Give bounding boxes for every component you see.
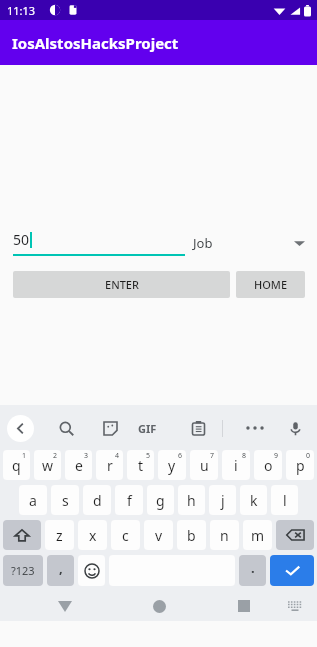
button[interactable]: Home (146, 593, 172, 619)
button[interactable]: v (144, 520, 173, 550)
staticText: t (138, 456, 144, 475)
button[interactable]: Recent apps (231, 593, 257, 619)
button[interactable]: ENTER (13, 271, 230, 298)
staticText: Job (193, 234, 213, 252)
staticText: w (42, 456, 54, 475)
button[interactable]: Done (270, 555, 314, 586)
button[interactable]: h (178, 485, 205, 515)
button[interactable]: w (34, 450, 61, 480)
staticText: 50 (13, 230, 30, 249)
staticText: 7 (210, 451, 215, 461)
button[interactable]: Emoji (78, 555, 105, 586)
button[interactable]: r (96, 450, 123, 480)
other: Keyboard active (283, 594, 307, 618)
button[interactable]: y (158, 450, 186, 480)
staticText: q (12, 456, 21, 475)
staticText: n (220, 526, 229, 545)
staticText: 8 (242, 451, 247, 461)
staticText: c (122, 526, 129, 545)
button[interactable]: . (239, 555, 266, 586)
button[interactable]: j (209, 485, 236, 515)
button[interactable]: e (65, 450, 92, 480)
button[interactable]: Backspace (276, 520, 314, 550)
staticText: 3 (84, 451, 89, 461)
button[interactable]: g (147, 485, 174, 515)
staticText: 2 (53, 451, 58, 461)
staticText: a (29, 491, 37, 510)
staticText: 0 (306, 451, 311, 461)
staticText: p (296, 456, 305, 475)
button[interactable]: m (243, 520, 272, 550)
staticText: x (89, 526, 97, 545)
button[interactable]: GIF (138, 421, 157, 436)
staticText: u (200, 456, 209, 475)
staticText: o (264, 456, 273, 475)
button[interactable]: 50 (13, 230, 185, 256)
staticText: f (127, 491, 132, 510)
staticText: i (234, 456, 238, 475)
staticText: e (75, 456, 83, 475)
staticText: j (221, 491, 225, 510)
staticText: 4 (115, 451, 120, 461)
button[interactable]: s (51, 485, 79, 515)
staticText: 11:13 (7, 3, 36, 18)
button[interactable]: HOME (236, 271, 305, 298)
button[interactable]: n (210, 520, 239, 550)
button[interactable]: o (254, 450, 282, 480)
button[interactable]: p (286, 450, 314, 480)
staticText: l (283, 491, 287, 510)
button[interactable]: , (47, 555, 74, 586)
staticText: d (93, 491, 102, 510)
staticText: y (168, 456, 176, 475)
staticText: v (155, 526, 163, 545)
staticText: r (107, 456, 113, 475)
button[interactable]: Stickers (96, 414, 124, 442)
button[interactable]: z (45, 520, 74, 550)
staticText: m (251, 526, 265, 545)
button[interactable]: f (115, 485, 143, 515)
staticText: 6 (178, 451, 183, 461)
staticText: z (56, 526, 63, 545)
staticText: ?123 (11, 563, 35, 578)
button[interactable]: i (222, 450, 250, 480)
button[interactable]: Back (7, 415, 34, 442)
staticText: b (187, 526, 196, 545)
button[interactable]: u (190, 450, 218, 480)
staticText: ENTER (105, 277, 139, 292)
staticText: k (250, 491, 258, 510)
button[interactable]: Clipboard (184, 414, 212, 442)
staticText: . (251, 559, 255, 577)
button[interactable]: a (19, 485, 47, 515)
staticText: h (187, 491, 196, 510)
staticText: s (62, 491, 69, 510)
button[interactable]: Voice input (281, 414, 309, 442)
button[interactable]: q (3, 450, 30, 480)
staticText: g (156, 491, 165, 510)
button[interactable]: Search (52, 414, 80, 442)
button[interactable]: c (111, 520, 140, 550)
button[interactable]: Shift (3, 520, 41, 550)
staticText: 9 (274, 451, 279, 461)
staticText: IosAlstosHacksProject (12, 33, 179, 53)
button[interactable]: t (127, 450, 154, 480)
staticText: , (59, 559, 63, 577)
staticText: HOME (254, 277, 288, 292)
button[interactable]: d (83, 485, 111, 515)
button[interactable]: b (177, 520, 206, 550)
button[interactable]: x (78, 520, 107, 550)
button[interactable]: Job (193, 230, 305, 256)
staticText: 5 (146, 451, 151, 461)
button[interactable]: ?123 (3, 555, 43, 586)
staticText: 1 (22, 451, 27, 461)
button[interactable]: Back (52, 593, 78, 619)
button[interactable]: More options (240, 414, 272, 442)
button[interactable]: l (271, 485, 298, 515)
button[interactable]: k (240, 485, 267, 515)
